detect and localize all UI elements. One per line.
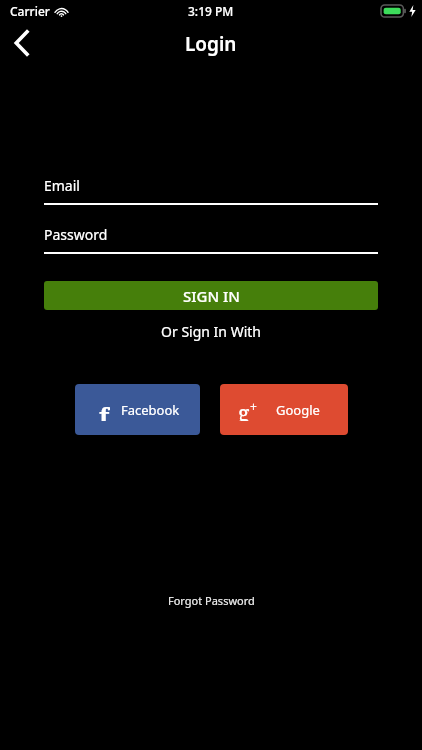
staticText: SIGN IN [183, 286, 240, 306]
button[interactable]: Password [44, 225, 378, 254]
button[interactable]: SIGN IN [44, 281, 378, 310]
staticText: Carrier [10, 3, 50, 19]
staticText: Google [276, 401, 320, 419]
staticText: Facebook [121, 401, 180, 419]
button[interactable]: g [220, 384, 348, 435]
staticText: f [99, 399, 110, 421]
staticText: Email [44, 176, 80, 195]
button[interactable]: Back [0, 21, 44, 65]
staticText: Login [185, 31, 237, 57]
staticText: 3:19 PM [188, 3, 234, 19]
staticText: Password [44, 225, 108, 244]
staticText: g [238, 399, 250, 421]
staticText: Or Sign In With [44, 322, 378, 341]
staticText: + [250, 398, 257, 414]
button[interactable]: f [75, 384, 200, 435]
button[interactable]: Email [44, 176, 378, 205]
button[interactable]: Forgot Password [160, 590, 263, 611]
staticText: Forgot Password [168, 593, 255, 608]
